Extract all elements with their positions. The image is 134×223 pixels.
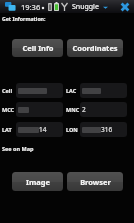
staticText: LAT (2, 126, 12, 133)
button[interactable]: 14 (16, 122, 63, 137)
button[interactable]: Browser (67, 172, 123, 191)
staticText: MCC (2, 106, 15, 113)
button[interactable]: Task switcher (5, 2, 16, 11)
staticText: Get Information: (2, 15, 46, 22)
button[interactable] (16, 102, 63, 117)
staticText: Cell (2, 87, 13, 94)
staticText: MNC (66, 106, 80, 113)
staticText: 316 (101, 125, 113, 134)
button[interactable] (80, 83, 127, 98)
staticText: Cell Info (22, 43, 54, 53)
staticText: Coordinates (72, 43, 118, 53)
button[interactable]: Cell Info (12, 39, 63, 57)
button[interactable] (16, 83, 63, 98)
button[interactable]: 316 (80, 122, 127, 137)
staticText: 14 (39, 125, 47, 134)
staticText: LON (66, 126, 78, 133)
staticText: Snuggle (72, 2, 99, 12)
button[interactable]: Close (120, 2, 130, 12)
button[interactable]: See on Map (2, 145, 34, 152)
staticText: 2 (82, 105, 86, 114)
staticText: See on Map (2, 145, 34, 152)
button[interactable]: Image (12, 172, 63, 191)
button[interactable]: Coordinates (67, 39, 123, 57)
button[interactable]: 2 (80, 102, 127, 117)
staticText: Image (26, 177, 50, 187)
staticText: Browser (80, 177, 111, 187)
staticText: 19:36 (21, 2, 41, 12)
staticText: LAC (66, 87, 77, 94)
